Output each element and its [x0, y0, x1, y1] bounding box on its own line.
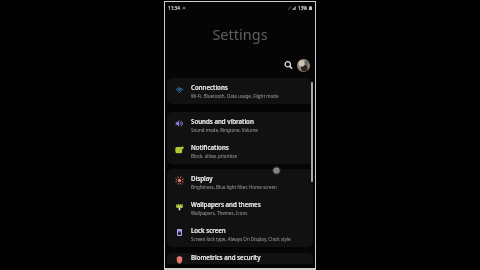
staticText: Wallpapers, Themes, Icons: [191, 210, 248, 216]
staticText: Notifications: [191, 143, 229, 151]
staticText: Block, allow, prioritize: [191, 153, 237, 159]
button[interactable]: Notifications: [167, 138, 313, 164]
button[interactable]: Connections: [167, 78, 313, 104]
button[interactable]: Wallpapers and themes: [167, 195, 313, 221]
staticText: Sounds and vibration: [191, 117, 254, 125]
button[interactable]: Search: [282, 59, 295, 72]
staticText: Wallpapers and themes: [191, 200, 261, 208]
button[interactable]: Sounds and vibration: [167, 112, 313, 138]
button[interactable]: Lock screen: [167, 221, 313, 247]
staticText: Connections: [191, 83, 228, 91]
staticText: Lock screen: [191, 226, 226, 234]
button[interactable]: Profile: [297, 59, 310, 72]
staticText: Biometrics and security: [191, 253, 261, 261]
staticText: Display: [191, 174, 213, 182]
button[interactable]: Biometrics and security: [167, 253, 313, 268]
staticText: 13%: [298, 5, 308, 11]
staticText: Sound mode, Ringtone, Volume: [191, 127, 258, 133]
staticText: Brightness, Blue light filter, Home scre…: [191, 184, 277, 190]
staticText: Settings: [212, 24, 268, 44]
staticText: Screen lock type, Always On Display, Clo…: [191, 236, 291, 242]
button[interactable]: Display: [167, 169, 313, 195]
staticText: Wi-Fi, Bluetooth, Data usage, Flight mod…: [191, 93, 279, 99]
staticText: Face recognition, Fingerprints: [191, 263, 255, 268]
staticText: 11:34: [168, 5, 180, 11]
